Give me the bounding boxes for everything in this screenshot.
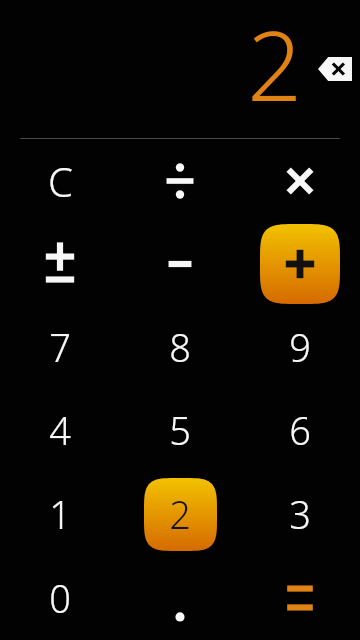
button[interactable]: Equals: [240, 556, 360, 640]
staticText: 9: [289, 321, 311, 373]
button[interactable]: 2: [120, 472, 240, 556]
button[interactable]: 0: [0, 556, 120, 640]
staticText: 0: [49, 572, 71, 624]
staticText: 4: [49, 404, 71, 456]
button[interactable]: 9: [240, 305, 360, 388]
button[interactable]: 3: [240, 472, 360, 556]
button[interactable]: 8: [120, 305, 240, 388]
button[interactable]: Backspace: [313, 47, 357, 91]
button[interactable]: Minus: [120, 222, 240, 305]
staticText: 3: [289, 488, 311, 540]
staticText: C: [48, 154, 73, 208]
staticText: 7: [49, 321, 71, 373]
button[interactable]: C: [0, 139, 120, 222]
button[interactable]: 5: [120, 388, 240, 472]
staticText: 2: [169, 488, 191, 540]
button[interactable]: 1: [0, 472, 120, 556]
button[interactable]: Plus minus: [0, 222, 120, 305]
button[interactable]: Divide: [120, 139, 240, 222]
staticText: 2: [247, 0, 302, 129]
staticText: 1: [49, 488, 71, 540]
button[interactable]: 4: [0, 388, 120, 472]
staticText: 5: [169, 404, 191, 456]
button[interactable]: 7: [0, 305, 120, 388]
staticText: 6: [289, 404, 311, 456]
button[interactable]: Decimal point: [120, 556, 240, 640]
button[interactable]: 6: [240, 388, 360, 472]
button[interactable]: Plus: [240, 222, 360, 305]
button[interactable]: Multiply: [240, 139, 360, 222]
staticText: 8: [169, 321, 191, 373]
